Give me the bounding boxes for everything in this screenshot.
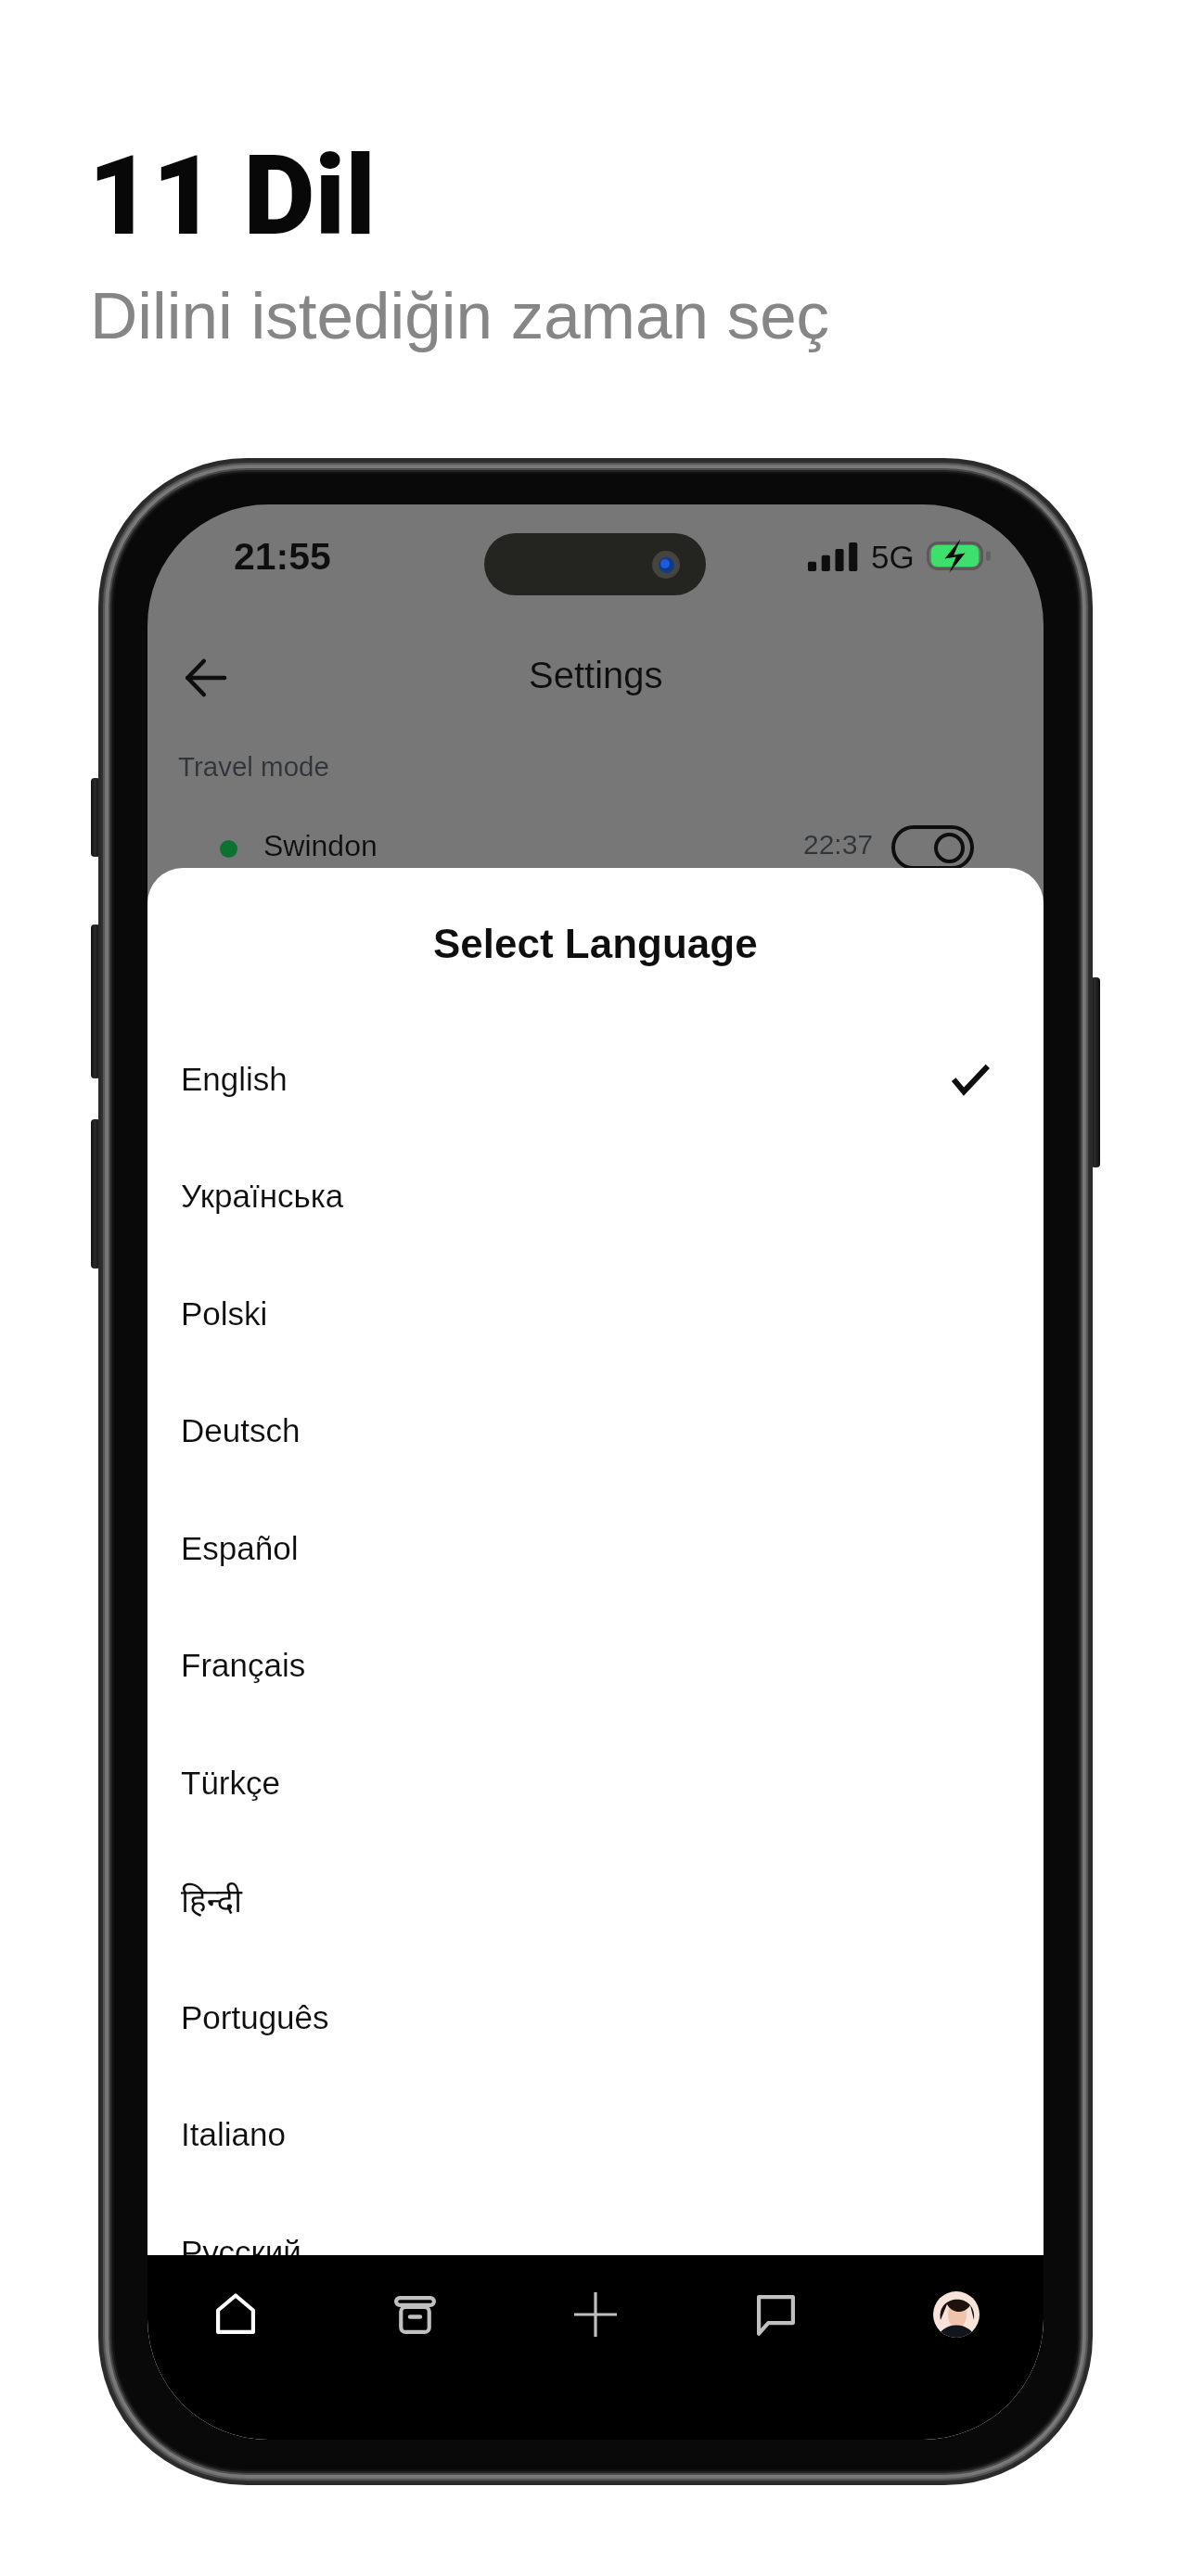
- button[interactable]: Español: [147, 1489, 1044, 1607]
- staticText: Polski: [181, 1295, 268, 1332]
- button[interactable]: English: [147, 1020, 1044, 1138]
- staticText: Settings: [529, 655, 663, 696]
- button[interactable]: Français: [147, 1606, 1044, 1724]
- staticText: Français: [181, 1647, 306, 1683]
- button[interactable]: Русский: [147, 2193, 1044, 2311]
- button[interactable]: Português: [147, 1958, 1044, 2076]
- staticText: 22:37: [803, 829, 874, 861]
- button[interactable]: Deutsch: [147, 1371, 1044, 1489]
- staticText: हिन्दी: [181, 1878, 243, 1922]
- staticText: Dilini istediğin zaman seç: [90, 279, 830, 352]
- staticText: 21:55: [234, 535, 331, 578]
- button[interactable]: Türkçe: [147, 1724, 1044, 1842]
- staticText: Українська: [181, 1178, 344, 1214]
- staticText: Türkçe: [181, 1765, 280, 1801]
- staticText: Select Language: [433, 921, 758, 966]
- button[interactable]: Українська: [147, 1137, 1044, 1255]
- staticText: Русский: [181, 2234, 301, 2270]
- staticText: 11 Dil: [88, 132, 376, 261]
- button[interactable]: Italiano: [147, 2075, 1044, 2193]
- staticText: Travel mode: [178, 751, 329, 782]
- button[interactable]: Archive: [370, 2270, 459, 2359]
- staticText: Português: [181, 1999, 329, 2035]
- staticText: 5G: [871, 539, 915, 575]
- button[interactable]: Profile: [933, 2291, 980, 2338]
- staticText: Español: [181, 1530, 299, 1566]
- button[interactable]: Messages: [731, 2270, 820, 2359]
- button[interactable]: Add: [551, 2270, 640, 2359]
- staticText: English: [181, 1061, 288, 1097]
- staticText: Italiano: [181, 2116, 286, 2152]
- staticText: Deutsch: [181, 1412, 301, 1448]
- staticText: Swindon: [263, 829, 378, 862]
- button[interactable]: Travel mode toggle: [891, 825, 974, 870]
- button[interactable]: Back: [165, 638, 245, 718]
- button[interactable]: हिन्दी: [147, 1841, 1044, 1958]
- button[interactable]: Polski: [147, 1255, 1044, 1372]
- button[interactable]: Home: [191, 2269, 280, 2358]
